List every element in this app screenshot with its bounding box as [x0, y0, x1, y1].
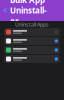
button[interactable]	[4, 46, 60, 54]
button[interactable]	[4, 55, 60, 63]
button[interactable]: Back	[3, 5, 8, 16]
staticText: Bulk App Uninstaller	[10, 0, 47, 26]
button[interactable]	[4, 37, 60, 45]
staticText: <	[3, 5, 8, 16]
button[interactable]	[4, 28, 60, 36]
staticText: Uninstall Apps	[15, 21, 49, 28]
